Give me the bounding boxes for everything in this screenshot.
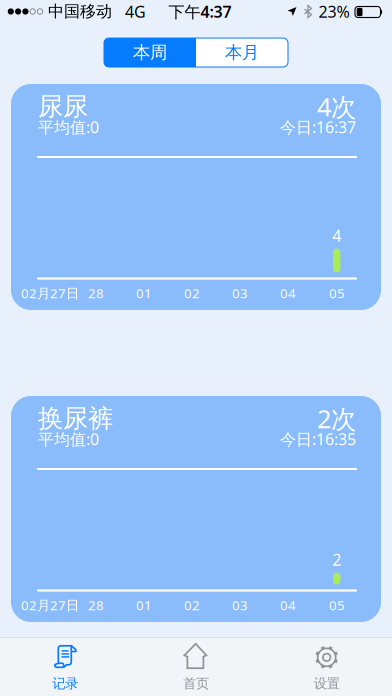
staticText: 03 xyxy=(232,596,248,614)
staticText: 设置 xyxy=(314,675,340,692)
staticText: 换尿裤 xyxy=(38,403,113,434)
staticText: 02 xyxy=(184,284,200,302)
staticText: 记录 xyxy=(52,675,78,692)
staticText: 中国移动 xyxy=(48,2,112,21)
staticText: 05 xyxy=(329,284,345,302)
staticText: 今日:16:35 xyxy=(280,428,356,450)
staticText: 02 xyxy=(184,596,200,614)
staticText: 03 xyxy=(232,284,248,302)
staticText: 04 xyxy=(280,596,296,614)
button[interactable]: 设置 xyxy=(279,641,375,693)
button[interactable]: 记录 xyxy=(17,641,113,693)
staticText: 01 xyxy=(136,596,152,614)
staticText: 23% xyxy=(318,1,349,22)
staticText: 下午4:37 xyxy=(168,1,231,22)
staticText: 28 xyxy=(88,596,104,614)
staticText: 平均值:0 xyxy=(38,116,99,138)
staticText: 28 xyxy=(88,284,104,302)
staticText: 首页 xyxy=(183,675,209,692)
staticText: 今日:16:37 xyxy=(280,116,356,138)
button[interactable]: 本周 xyxy=(104,38,196,67)
staticText: 4次 xyxy=(317,90,356,123)
staticText: 平均值:0 xyxy=(38,428,99,450)
staticText: 2 xyxy=(332,549,341,570)
staticText: 4G xyxy=(125,1,146,22)
button[interactable]: 本月 xyxy=(196,38,288,67)
staticText: 02月27日 xyxy=(21,596,79,614)
staticText: 尿尿 xyxy=(38,91,88,122)
staticText: 02月27日 xyxy=(21,284,79,302)
staticText: 本月 xyxy=(225,42,259,63)
staticText: 2次 xyxy=(317,402,356,435)
button[interactable]: 首页 xyxy=(148,641,244,693)
staticText: 05 xyxy=(329,596,345,614)
staticText: 4 xyxy=(332,225,341,246)
staticText: 本周 xyxy=(133,42,167,63)
staticText: 01 xyxy=(136,284,152,302)
staticText: 04 xyxy=(280,284,296,302)
